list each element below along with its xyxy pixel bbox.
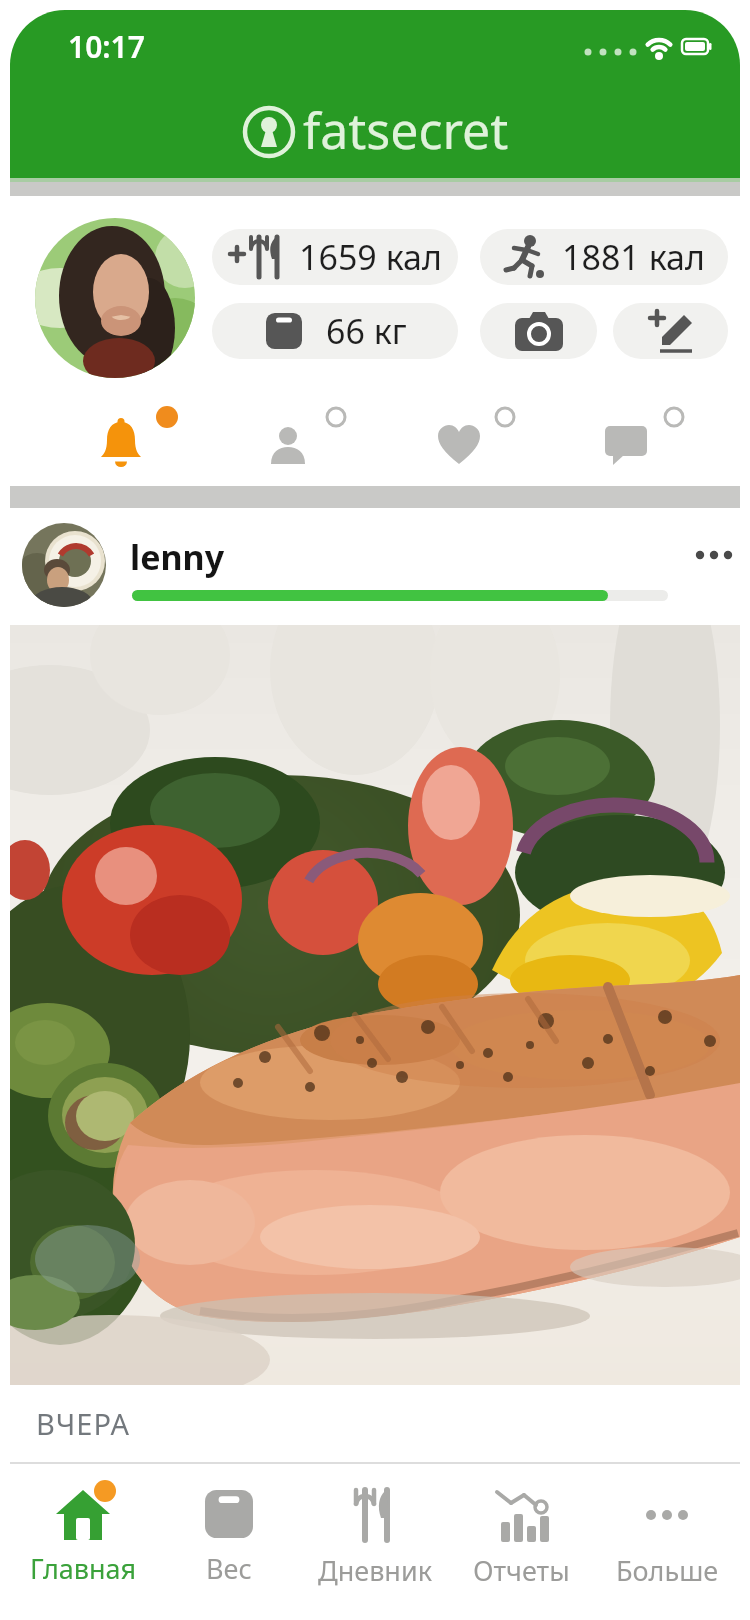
staticText: 66 кг [326, 308, 407, 354]
staticText: fatsecret [303, 96, 509, 164]
staticText: Вес [206, 1550, 252, 1587]
button[interactable] [267, 406, 347, 466]
button[interactable] [605, 406, 685, 466]
button[interactable]: 1659 кал [212, 229, 458, 285]
button[interactable]: 66 кг [212, 303, 458, 359]
staticText: Главная [30, 1550, 137, 1587]
button[interactable] [480, 303, 597, 359]
button[interactable]: Главная [10, 1464, 156, 1609]
staticText: Отчеты [473, 1552, 570, 1589]
button[interactable] [98, 406, 178, 466]
staticText: 1881 кал [562, 234, 705, 280]
button[interactable] [613, 303, 728, 359]
staticText: Дневник [318, 1552, 433, 1589]
staticText: 1659 кал [299, 234, 442, 280]
staticText: ВЧЕРА [36, 1404, 131, 1443]
button[interactable] [10, 625, 740, 1385]
staticText: Больше [616, 1552, 719, 1589]
button[interactable]: Отчеты [448, 1464, 594, 1609]
button[interactable]: Дневник [302, 1464, 448, 1609]
button[interactable] [35, 218, 195, 378]
staticText: lenny [130, 534, 225, 580]
button[interactable] [436, 406, 516, 466]
button[interactable]: Больше [594, 1464, 740, 1609]
button[interactable]: 1881 кал [480, 229, 728, 285]
staticText: 10:17 [68, 26, 145, 67]
button[interactable] [694, 548, 738, 562]
button[interactable]: Вес [156, 1464, 302, 1609]
